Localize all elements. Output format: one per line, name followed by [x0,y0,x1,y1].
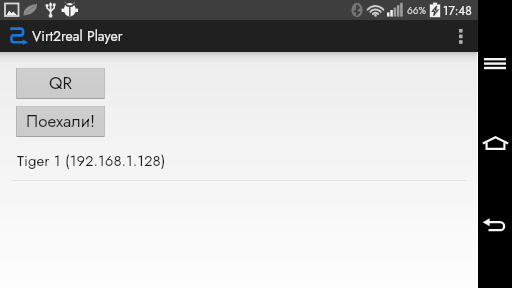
staticText: Tiger 1 (192.168.1.128) [17,150,166,172]
button[interactable]: More options [444,20,478,52]
staticText: 66% [407,3,427,17]
button[interactable]: Home [478,126,512,160]
button[interactable]: Back [478,208,512,242]
button[interactable]: QR [16,68,105,99]
staticText: Поехали! [26,109,96,134]
button[interactable]: Поехали! [16,106,105,137]
staticText: 17:48 [443,2,472,19]
staticText: QR [49,71,72,96]
button[interactable]: Recent apps [478,46,512,80]
staticText: Virt2real Player [32,26,123,46]
